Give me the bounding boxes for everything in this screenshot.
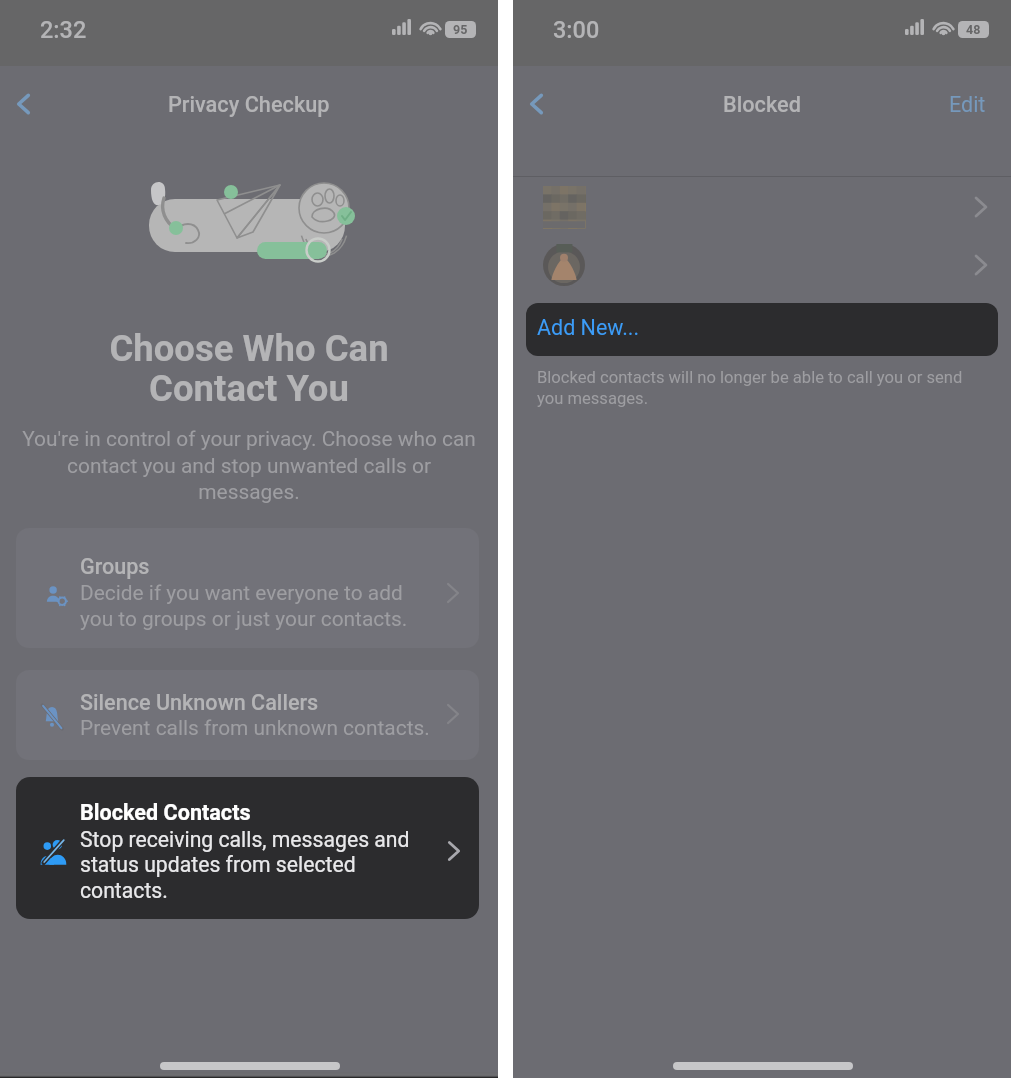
button[interactable]: Blocked contact [513,178,1011,236]
button[interactable]: Add New... [526,303,998,356]
staticText: Silence Unknown Callers [80,690,319,715]
staticText: Edit [949,92,986,117]
staticText: Choose Who Can Contact You [24,327,474,410]
button[interactable]: Edit [915,68,1011,140]
staticText: You're in control of your privacy. Choos… [16,427,482,504]
staticText: 2:32 [40,16,87,44]
staticText: 48 [966,22,981,37]
button[interactable]: Blocked Contacts [16,777,479,919]
button[interactable]: Silence Unknown Callers [16,670,479,760]
staticText: Groups [80,554,150,579]
staticText: Blocked contacts will no longer be able … [537,368,963,408]
button[interactable]: Back [513,68,565,140]
staticText: 3:00 [553,16,600,44]
staticText: Blocked Contacts [80,800,251,825]
staticText: Decide if you want everyone to add you t… [80,581,408,631]
staticText: 95 [453,22,468,37]
staticText: Stop receiving calls, messages and statu… [80,827,410,904]
staticText: Add New... [537,315,640,340]
button[interactable]: Groups [16,528,479,648]
staticText: Privacy Checkup [168,92,330,117]
staticText: Blocked [723,92,801,117]
staticText: Prevent calls from unknown contacts. [80,716,430,740]
button[interactable]: Blocked contact [513,236,1011,294]
button[interactable]: Back [0,68,52,140]
